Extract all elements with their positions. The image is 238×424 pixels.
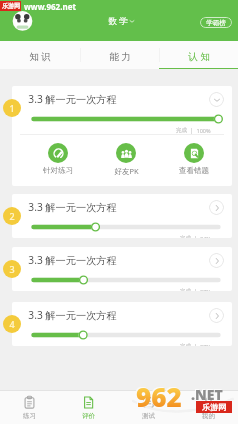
button[interactable]: 测试 bbox=[118, 391, 178, 424]
staticText: 962 bbox=[135, 378, 181, 412]
button[interactable]: 练习 bbox=[0, 391, 59, 424]
button[interactable]: 针对练习 bbox=[23, 136, 92, 176]
staticText: 3 bbox=[9, 263, 15, 275]
staticText: 查看错题 bbox=[179, 166, 209, 175]
staticText: 1 bbox=[9, 102, 15, 114]
staticText: 评价 bbox=[82, 412, 95, 420]
staticText: 好友PK bbox=[114, 166, 139, 176]
staticText: 27% bbox=[200, 343, 211, 346]
button[interactable]: Expand bbox=[209, 200, 224, 215]
button[interactable]: Collapse bbox=[209, 92, 224, 107]
button[interactable]: 知 识 bbox=[0, 41, 80, 69]
staticText: 34% bbox=[200, 235, 211, 238]
staticText: www.962.net bbox=[24, 1, 76, 11]
staticText: 认 知 bbox=[188, 50, 210, 63]
button[interactable]: 好友PK bbox=[92, 136, 160, 176]
button[interactable]: 3.3 解一元一次方程 bbox=[12, 194, 232, 238]
staticText: 3.3 解一元一次方程 bbox=[28, 253, 117, 267]
staticText: 2 bbox=[9, 210, 15, 222]
staticText: 完成 bbox=[180, 343, 191, 346]
button[interactable]: 3.3 解一元一次方程 bbox=[12, 247, 232, 291]
staticText: 练习 bbox=[23, 412, 36, 420]
button[interactable]: 我的 bbox=[178, 391, 238, 424]
staticText: 学霸榜 bbox=[206, 19, 226, 27]
button[interactable]: 查看错题 bbox=[160, 136, 228, 176]
staticText: 针对练习 bbox=[43, 166, 73, 175]
staticText: .NET bbox=[190, 384, 222, 403]
staticText: 100% bbox=[196, 127, 211, 134]
staticText: 能 力 bbox=[109, 50, 131, 63]
staticText: 27% bbox=[200, 288, 211, 291]
button[interactable]: 评价 bbox=[59, 391, 118, 424]
button[interactable]: Expand bbox=[209, 308, 224, 323]
staticText: 完成 bbox=[180, 288, 191, 291]
button[interactable]: Expand bbox=[209, 253, 224, 268]
staticText: 3.3 解一元一次方程 bbox=[28, 308, 117, 322]
staticText: 测试 bbox=[142, 412, 155, 420]
button[interactable]: 数 学 bbox=[108, 15, 135, 27]
staticText: 完成 bbox=[180, 235, 191, 238]
button[interactable]: 3.3 解一元一次方程 bbox=[12, 302, 232, 346]
staticText: 4 bbox=[9, 318, 15, 330]
staticText: 3.3 解一元一次方程 bbox=[28, 200, 117, 214]
staticText: 知 识 bbox=[29, 50, 51, 63]
button[interactable]: 能 力 bbox=[80, 41, 159, 69]
staticText: 完成 bbox=[176, 127, 187, 134]
staticText: 3.3 解一元一次方程 bbox=[28, 92, 117, 106]
staticText: 962 bbox=[136, 379, 182, 413]
button[interactable]: 学霸榜 bbox=[200, 17, 232, 28]
staticText: 数 学 bbox=[108, 15, 128, 27]
staticText: .NET bbox=[191, 385, 223, 404]
button[interactable]: 认 知 bbox=[159, 41, 238, 69]
staticText: 乐游网 bbox=[202, 402, 226, 412]
staticText: 乐游网 bbox=[2, 2, 20, 10]
staticText: 我的 bbox=[202, 412, 215, 420]
button[interactable]: 3.3 解一元一次方程 bbox=[12, 86, 232, 186]
